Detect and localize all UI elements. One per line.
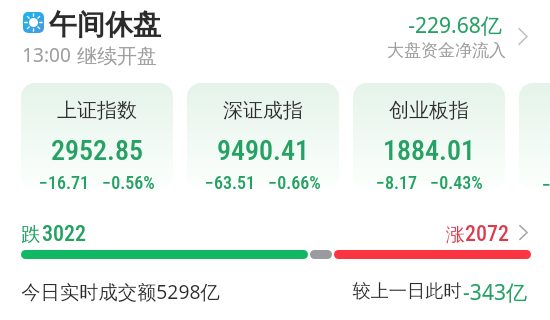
staticText: 跌 [21, 223, 40, 247]
staticText: 大盘资金净流入 [387, 40, 506, 61]
button[interactable]: -229.68亿 [380, 6, 535, 62]
button[interactable]: 创业板指 [353, 83, 505, 190]
button[interactable]: 跌 [0, 214, 550, 248]
staticText: 深证成指 [223, 98, 303, 123]
staticText: 2952.85 [51, 134, 143, 167]
staticText: -343亿 [463, 278, 527, 307]
staticText: 较上一日此时 [352, 279, 462, 302]
staticText: −0.43% [430, 172, 483, 190]
button[interactable]: 上证指数 [21, 83, 173, 190]
button[interactable]: 深证成指 [187, 83, 339, 190]
staticText: −6.52 [542, 174, 550, 190]
staticText: -229.68亿 [408, 11, 502, 40]
staticText: 创业板指 [389, 98, 469, 123]
staticText: 3022 [42, 221, 86, 247]
staticText: 涨 [446, 223, 465, 247]
staticText: 午间休盘 [49, 7, 161, 42]
staticText: −0.66% [268, 172, 321, 190]
staticText: 今日实时成交额5298亿 [21, 278, 220, 304]
button[interactable]: 科创50 [519, 83, 550, 190]
other: More [519, 225, 528, 240]
other: More [518, 28, 528, 45]
staticText: 13:00 [22, 42, 71, 68]
staticText: 上证指数 [57, 98, 137, 123]
staticText: 9490.41 [217, 134, 309, 167]
staticText: −16.71 [39, 172, 89, 190]
staticText: 1884.01 [383, 134, 475, 167]
staticText: 继续开盘 [77, 44, 157, 69]
staticText: −63.51 [205, 172, 255, 190]
staticText: 2072 [465, 221, 509, 247]
staticText: −0.56% [102, 172, 155, 190]
staticText: −8.17 [376, 172, 417, 190]
